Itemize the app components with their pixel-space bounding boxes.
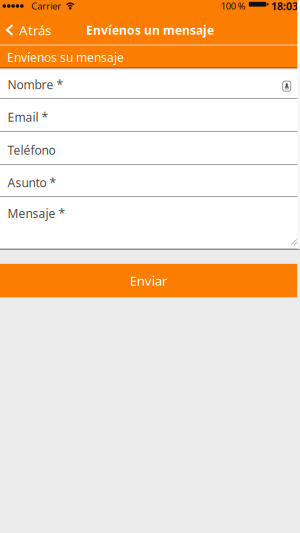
staticText: Mensaje * (7, 205, 65, 221)
staticText: Nombre * (7, 77, 63, 92)
staticText: 100 % (221, 0, 246, 12)
staticText: 18:03 (271, 0, 298, 13)
staticText: Atrás (19, 21, 51, 39)
button[interactable]: Teléfono (0, 132, 300, 164)
staticText: Enviar (130, 272, 168, 289)
staticText: Carrier (31, 0, 61, 12)
staticText: Envíenos su mensaje (7, 49, 124, 65)
button[interactable]: Asunto * (0, 165, 300, 196)
staticText: Envíenos un mensaje (86, 22, 214, 38)
staticText: Teléfono (7, 142, 55, 158)
button[interactable]: Nombre (0, 70, 300, 98)
staticText: Email * (7, 109, 48, 125)
staticText: Asunto * (7, 174, 56, 190)
button[interactable]: Mensaje (0, 197, 300, 248)
button[interactable]: Contactos (282, 81, 300, 91)
button[interactable]: Enviar (0, 264, 297, 297)
button[interactable]: Email * (0, 99, 300, 131)
button[interactable]: Atrás (0, 21, 51, 39)
